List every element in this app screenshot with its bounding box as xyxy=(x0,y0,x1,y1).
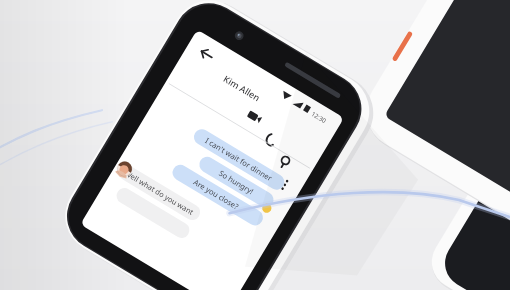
button[interactable] xyxy=(0,0,510,290)
other: Messages app on two phones xyxy=(0,0,510,290)
